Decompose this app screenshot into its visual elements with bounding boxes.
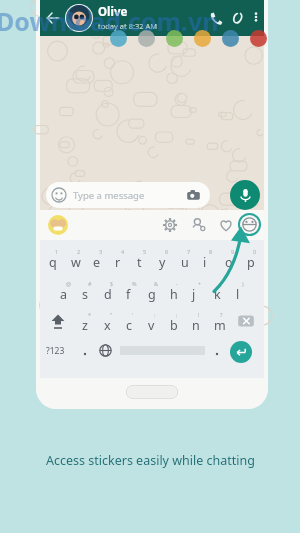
button[interactable]: Avatar [190, 217, 206, 233]
button[interactable]: Back [43, 8, 63, 28]
button[interactable]: Voice message [230, 180, 260, 210]
button[interactable]: Home [126, 385, 178, 399]
staticText: b [170, 317, 178, 334]
staticText: Type a message [73, 189, 145, 202]
button[interactable]: Favorites [218, 217, 234, 233]
staticText: 0 [253, 248, 257, 255]
staticText: ! [198, 311, 200, 318]
button[interactable]: More options [249, 10, 263, 24]
button[interactable]: + [187, 280, 207, 302]
button[interactable] [65, 4, 93, 32]
button[interactable]: : [143, 311, 163, 333]
button[interactable]: Type a message [46, 182, 210, 208]
button[interactable]: 5 [132, 248, 152, 270]
staticText: 7 [187, 248, 191, 255]
staticText: i [203, 254, 207, 271]
staticText: l [236, 286, 240, 303]
button[interactable]: Stickers [238, 213, 261, 236]
button[interactable]: ; [165, 311, 185, 333]
staticText: * [88, 311, 92, 318]
button[interactable]: * [77, 311, 97, 333]
staticText: $ [110, 280, 114, 287]
staticText: today at 8:32 AM [98, 21, 158, 31]
button[interactable]: 3 [88, 248, 108, 270]
button[interactable]: Settings [162, 217, 178, 233]
staticText: f [126, 286, 131, 303]
button[interactable]: @ [55, 280, 75, 302]
staticText: - [176, 280, 178, 287]
staticText: a [60, 286, 68, 303]
staticText: s [82, 286, 88, 303]
button[interactable]: Enter [230, 341, 252, 363]
button[interactable]: - [165, 280, 185, 302]
staticText: d [104, 286, 112, 303]
staticText: h [170, 286, 178, 303]
staticText: e [93, 254, 101, 271]
staticText: t [137, 254, 142, 271]
staticText: 9 [231, 248, 235, 255]
staticText: o [225, 254, 233, 271]
button[interactable]: 9 [220, 248, 240, 270]
button[interactable]: $ [99, 280, 119, 302]
staticText: g [148, 286, 156, 303]
staticText: 6 [165, 248, 169, 255]
button[interactable]: Change language [99, 344, 112, 357]
staticText: ?123 [46, 345, 65, 357]
button[interactable]: 2 [66, 248, 86, 270]
button[interactable]: Back [40, 0, 264, 36]
staticText: @ [66, 280, 71, 287]
staticText: # [88, 280, 92, 287]
staticText: ) [242, 280, 244, 287]
staticText: Download.com.vn [0, 4, 219, 38]
button[interactable]: # [77, 280, 97, 302]
button[interactable]: ' [121, 311, 141, 333]
button[interactable]: % [121, 280, 141, 302]
button[interactable]: Call [208, 10, 224, 26]
staticText: r [115, 254, 121, 271]
button[interactable]: ) [231, 280, 251, 302]
button[interactable]: 7 [176, 248, 196, 270]
staticText: y [159, 254, 166, 271]
button[interactable]: & [143, 280, 163, 302]
button[interactable]: Attach [229, 10, 245, 26]
button[interactable]: ( [209, 280, 229, 302]
button[interactable]: " [99, 311, 119, 333]
staticText: q [49, 254, 57, 271]
button[interactable]: 4 [110, 248, 130, 270]
staticText: " [110, 311, 113, 318]
staticText: ' [132, 311, 134, 318]
staticText: Access stickers easily while chatting [46, 452, 255, 469]
button[interactable]: ? [209, 311, 229, 333]
staticText: ( [220, 280, 222, 287]
staticText: p [247, 254, 255, 271]
staticText: 1 [55, 248, 59, 255]
staticText: j [192, 286, 196, 303]
staticText: ? [220, 311, 223, 318]
button[interactable]: Backspace [235, 313, 255, 329]
staticText: : [154, 311, 156, 318]
button[interactable]: 8 [198, 248, 218, 270]
button[interactable]: ?123 [46, 345, 65, 357]
staticText: k [214, 286, 221, 303]
button[interactable]: 6 [154, 248, 174, 270]
staticText: Olive [98, 4, 128, 20]
button[interactable]: 0 [242, 248, 262, 270]
staticText: x [104, 317, 111, 334]
button[interactable] [48, 215, 68, 235]
staticText: 8 [209, 248, 213, 255]
button[interactable]: 1 [44, 248, 64, 270]
button[interactable] [80, 348, 90, 358]
staticText: v [148, 317, 155, 334]
staticText: 4 [121, 248, 125, 255]
button[interactable]: Camera [186, 188, 201, 203]
staticText: c [126, 317, 133, 334]
button[interactable] [212, 348, 222, 358]
staticText: w [71, 254, 81, 271]
staticText: + [198, 280, 202, 287]
button[interactable]: ! [187, 311, 207, 333]
staticText: z [82, 317, 88, 334]
staticText: % [132, 280, 137, 287]
button[interactable]: Shift [48, 311, 68, 331]
staticText: m [214, 317, 226, 334]
